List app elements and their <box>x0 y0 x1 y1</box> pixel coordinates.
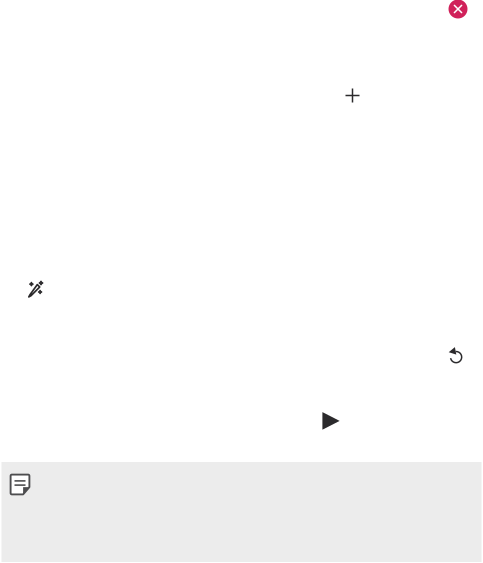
button[interactable]: Magic wand <box>28 281 44 297</box>
button[interactable]: Play <box>322 412 340 430</box>
button[interactable]: Add <box>345 88 360 103</box>
button[interactable]: Undo <box>448 347 463 364</box>
button[interactable]: Notes <box>9 473 30 495</box>
button[interactable]: Close <box>448 0 467 18</box>
